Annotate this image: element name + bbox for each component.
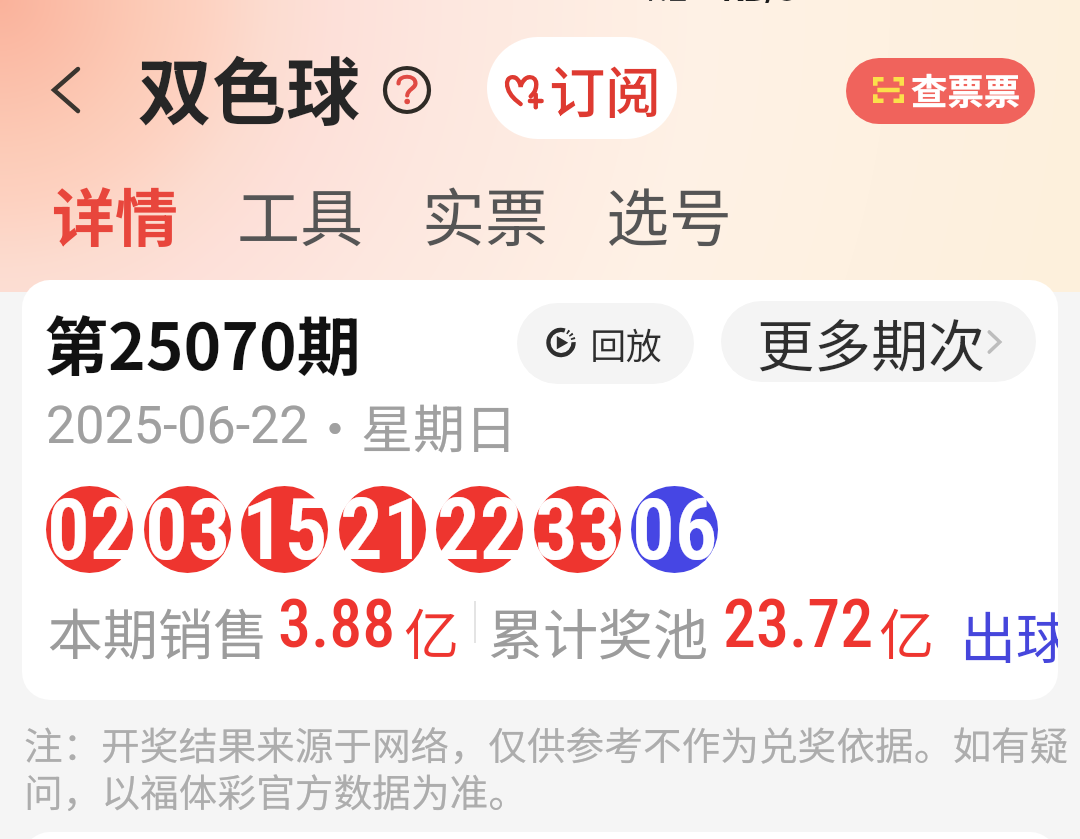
staticText: ・星期日 (309, 388, 518, 463)
staticText: 回放 (590, 317, 663, 369)
staticText: 订阅 (549, 48, 661, 129)
button[interactable]: Back (36, 52, 96, 128)
staticText: 21 (340, 480, 426, 580)
staticText: 注：开奖结果来源于网络，仅供参考不作为兑奖依据。如有疑 问，以福体彩官方数据为准… (24, 715, 1080, 818)
staticText: 3.88 (278, 586, 396, 663)
staticText: 亿 (404, 591, 460, 671)
staticText: KB/s (722, 0, 796, 9)
button[interactable]: Help (375, 58, 439, 122)
button[interactable]: 工具 (237, 168, 363, 259)
staticText: 23.72 (723, 586, 874, 663)
staticText: 亿 (879, 591, 935, 671)
staticText: 1.2 (640, 0, 688, 9)
staticText: 累计奖池 (488, 591, 709, 671)
staticText: 2025-06-22 (46, 395, 309, 456)
staticText: 双色球 (138, 33, 360, 140)
button[interactable]: 更多期次 (721, 301, 1036, 382)
staticText: 第25070期 (44, 296, 361, 389)
staticText: 15 (242, 480, 328, 580)
staticText: 03 (145, 480, 231, 580)
staticText: 06 (632, 480, 718, 580)
button[interactable]: 选号 (606, 168, 732, 259)
staticText: 出球 (960, 594, 1058, 674)
staticText: 查票票 (911, 63, 1021, 116)
button[interactable]: 订阅 (487, 37, 677, 139)
staticText: 更多期次 (757, 301, 985, 382)
staticText: 本期销售 (48, 591, 269, 671)
button[interactable]: 实票 (422, 168, 548, 259)
staticText: 33 (535, 480, 621, 580)
staticText: 22 (437, 480, 523, 580)
button[interactable]: 详情 (52, 168, 178, 259)
button[interactable]: 回放 (517, 303, 694, 384)
button[interactable]: 查票票 (846, 58, 1035, 124)
staticText: 02 (47, 480, 133, 580)
